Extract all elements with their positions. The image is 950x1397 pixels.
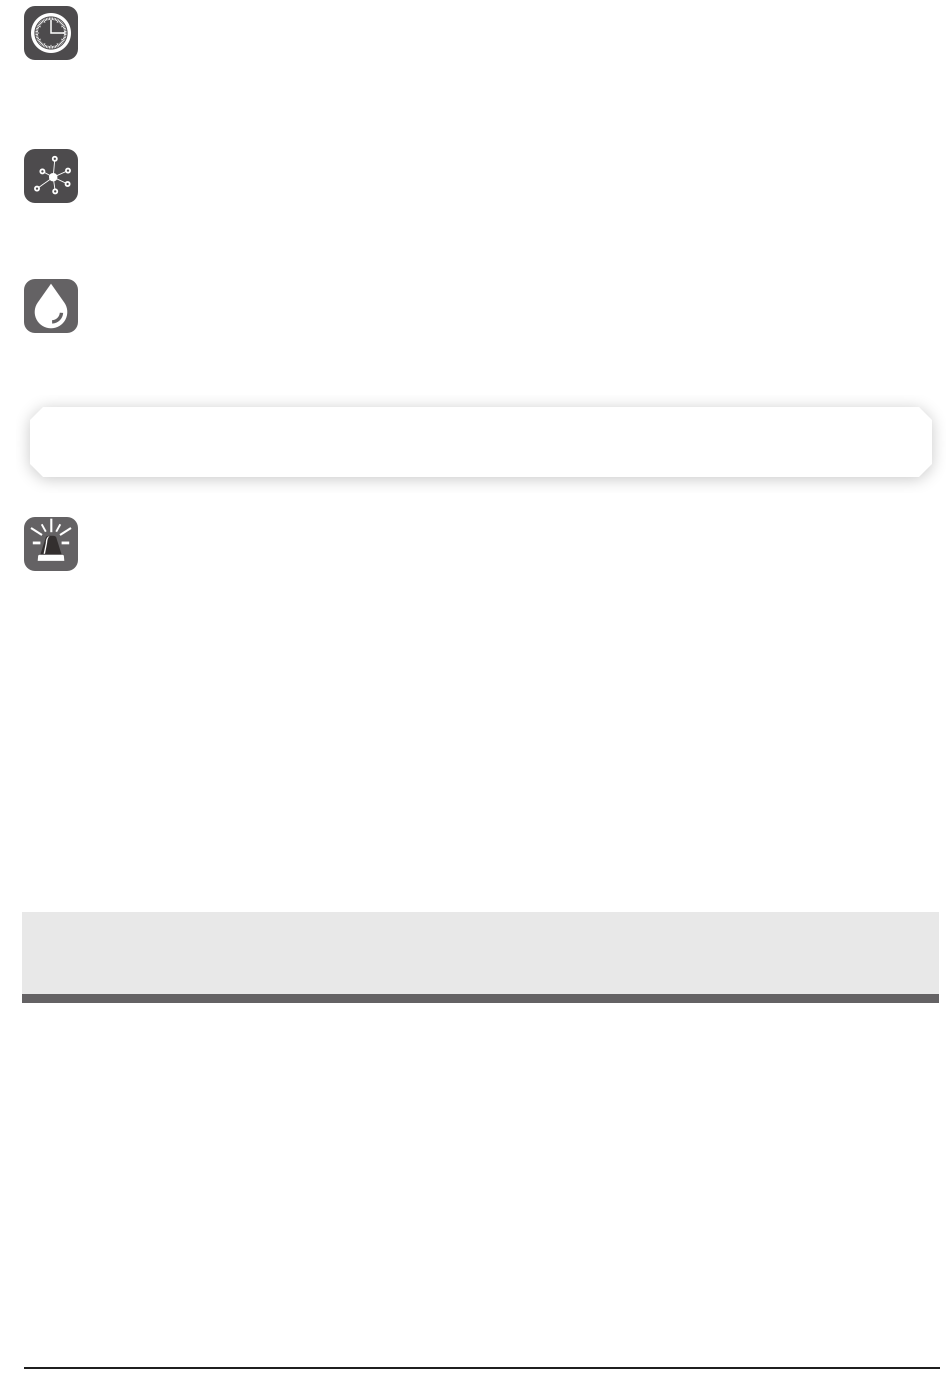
button[interactable]: Schedule [0, 6, 950, 60]
button[interactable]: Connected devices [0, 149, 950, 203]
button[interactable]: Alerts [0, 517, 950, 571]
button[interactable]: Notes [0, 912, 950, 1003]
button[interactable]: Water usage [0, 279, 950, 333]
